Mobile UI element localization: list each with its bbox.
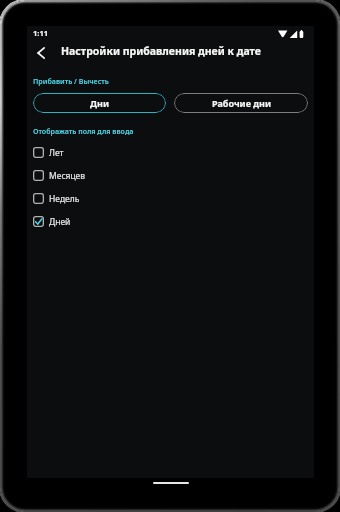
staticText: Рабочие дни	[212, 97, 271, 109]
staticText: Отображать поля для ввода	[33, 126, 134, 136]
button[interactable]: Дни	[33, 93, 166, 113]
staticText: Лет	[49, 147, 64, 159]
button[interactable]: Назад	[27, 39, 54, 66]
button[interactable]: Рабочие дни	[174, 93, 308, 113]
staticText: Недель	[49, 193, 80, 205]
button[interactable]: Лет	[29, 141, 312, 164]
staticText: Месяцев	[49, 170, 86, 182]
staticText: 1:11	[33, 28, 48, 38]
staticText: Дни	[90, 97, 109, 109]
button[interactable]: Недель	[29, 187, 312, 210]
button[interactable]: Дней	[29, 210, 312, 233]
staticText: Дней	[49, 216, 71, 228]
staticText: Прибавить / Вычесть	[33, 76, 109, 86]
staticText: Настройки прибавления дней к дате	[61, 44, 261, 58]
button[interactable]: Месяцев	[29, 164, 312, 187]
